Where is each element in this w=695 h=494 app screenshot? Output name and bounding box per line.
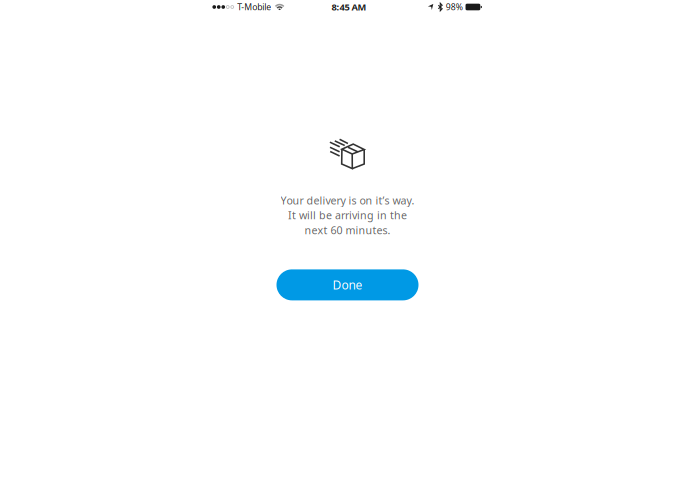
staticText: T-Mobile: [237, 1, 271, 13]
staticText: Your delivery is on it’s way.: [280, 193, 414, 207]
staticText: next 60 minutes.: [304, 223, 390, 237]
staticText: Done: [332, 277, 362, 293]
button[interactable]: Done: [276, 269, 418, 300]
staticText: It will be arriving in the: [288, 208, 407, 222]
staticText: 98%: [446, 1, 463, 13]
staticText: 8:45 AM: [331, 1, 366, 13]
